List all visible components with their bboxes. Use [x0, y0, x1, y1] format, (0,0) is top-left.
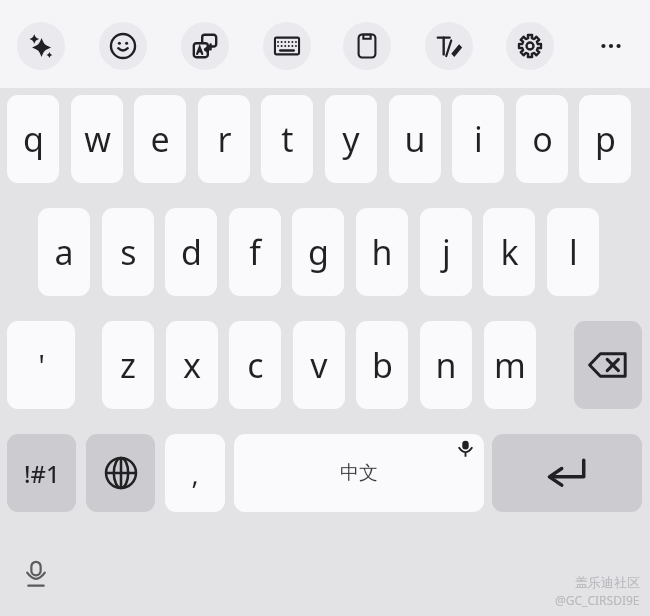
staticText: j [442, 229, 451, 275]
button[interactable]: x [166, 321, 218, 409]
button[interactable]: 中文 [234, 434, 484, 512]
staticText: g [308, 229, 329, 275]
button[interactable]: f [229, 208, 281, 296]
staticText: s [120, 229, 137, 275]
button[interactable]: c [229, 321, 281, 409]
button[interactable]: Switch language [86, 434, 155, 512]
button[interactable]: d [165, 208, 217, 296]
button[interactable]: t [261, 95, 313, 183]
button[interactable]: s [102, 208, 154, 296]
staticText: y [342, 116, 360, 162]
button[interactable]: h [356, 208, 408, 296]
button[interactable]: e [134, 95, 186, 183]
staticText: 中文 [340, 461, 378, 485]
button[interactable]: g [292, 208, 344, 296]
button[interactable]: Keyboard modes [263, 22, 311, 70]
staticText: ' [38, 345, 45, 386]
staticText: c [247, 342, 264, 388]
button[interactable]: Emoji [99, 22, 147, 70]
button[interactable]: Handwriting [425, 22, 473, 70]
button[interactable]: !#1 [7, 434, 76, 512]
button[interactable]: AI suggestions [17, 22, 65, 70]
staticText: w [84, 116, 111, 162]
staticText: k [500, 229, 519, 275]
button[interactable]: y [325, 95, 377, 183]
staticText: p [595, 116, 616, 162]
staticText: f [249, 229, 261, 275]
button[interactable]: i [452, 95, 504, 183]
button[interactable]: Voice input [14, 552, 58, 596]
staticText: 盖乐迪社区 [575, 574, 640, 590]
staticText: n [435, 342, 457, 388]
staticText: q [23, 116, 44, 162]
button[interactable]: ' [7, 321, 75, 409]
button[interactable]: w [71, 95, 123, 183]
button[interactable]: Translate [181, 22, 229, 70]
staticText: m [494, 342, 526, 388]
staticText: , [191, 455, 199, 492]
staticText: r [217, 116, 232, 162]
button[interactable]: More options [589, 24, 633, 68]
button[interactable]: z [102, 321, 154, 409]
button[interactable]: p [579, 95, 631, 183]
staticText: !#1 [24, 457, 60, 490]
button[interactable]: Settings [506, 22, 554, 70]
staticText: b [372, 342, 393, 388]
button[interactable]: r [198, 95, 250, 183]
button[interactable]: q [7, 95, 59, 183]
button[interactable]: b [356, 321, 408, 409]
staticText: z [120, 342, 136, 388]
staticText: x [183, 342, 201, 388]
button[interactable]: a [38, 208, 90, 296]
button[interactable]: m [484, 321, 536, 409]
staticText: d [181, 229, 202, 275]
button[interactable]: k [483, 208, 535, 296]
button[interactable]: Clipboard [343, 22, 391, 70]
staticText: e [150, 116, 170, 162]
staticText: h [371, 229, 393, 275]
button[interactable]: v [293, 321, 345, 409]
staticText: v [310, 342, 328, 388]
button[interactable]: u [389, 95, 441, 183]
staticText: i [474, 116, 483, 162]
button[interactable]: Backspace [574, 321, 642, 409]
staticText: o [532, 116, 553, 162]
staticText: a [54, 229, 74, 275]
button[interactable]: j [420, 208, 472, 296]
staticText: @GC_CIRSDI9E [555, 592, 640, 608]
staticText: l [569, 229, 578, 275]
button[interactable]: Enter [492, 434, 642, 512]
staticText: t [281, 116, 294, 162]
button[interactable]: n [420, 321, 472, 409]
staticText: u [404, 116, 426, 162]
button[interactable]: o [516, 95, 568, 183]
button[interactable]: l [547, 208, 599, 296]
button[interactable]: , [165, 434, 225, 512]
